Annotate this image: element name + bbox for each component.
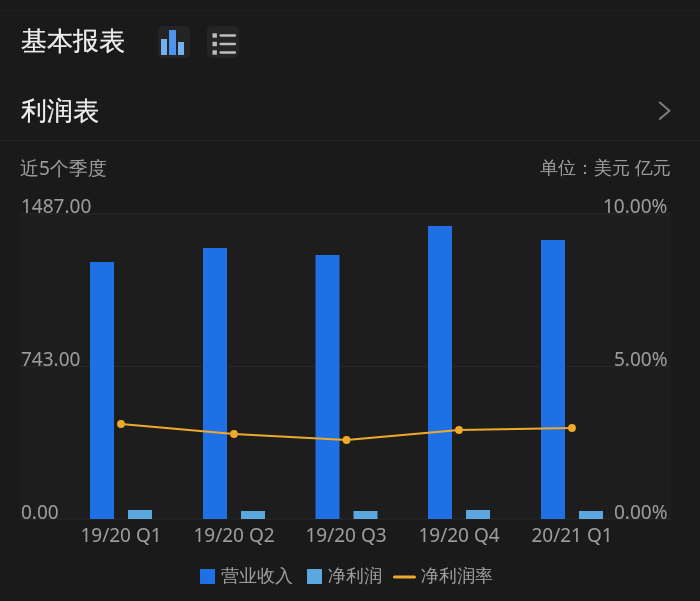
staticText: 1487.00 — [21, 193, 92, 219]
button[interactable]: Chart view — [158, 26, 190, 58]
staticText: 20/21 Q1 — [512, 522, 632, 548]
staticText: 单位：美元 亿元 — [540, 155, 671, 180]
button[interactable]: 营业收入 — [200, 565, 293, 588]
staticText: 利润表 — [21, 95, 99, 128]
staticText: 净利润率 — [421, 565, 493, 588]
button[interactable]: 基本报表 — [13, 18, 131, 64]
staticText: 19/20 Q1 — [61, 522, 181, 548]
staticText: 基本报表 — [21, 25, 125, 58]
button[interactable]: List view — [207, 26, 239, 58]
staticText: 0.00% — [614, 499, 668, 525]
staticText: 19/20 Q2 — [174, 522, 294, 548]
staticText: 5.00% — [614, 346, 668, 372]
staticText: 0.00 — [21, 499, 59, 525]
staticText: 营业收入 — [221, 565, 293, 588]
staticText: 近5个季度 — [20, 155, 107, 181]
button[interactable]: 净利润 — [307, 565, 382, 588]
staticText: 净利润 — [328, 565, 382, 588]
button[interactable]: 净利润率 — [393, 565, 493, 588]
staticText: 19/20 Q4 — [399, 522, 519, 548]
staticText: 10.00% — [603, 193, 668, 219]
button[interactable]: 利润表 — [0, 82, 700, 140]
staticText: 19/20 Q3 — [286, 522, 406, 548]
staticText: 743.00 — [21, 346, 81, 372]
